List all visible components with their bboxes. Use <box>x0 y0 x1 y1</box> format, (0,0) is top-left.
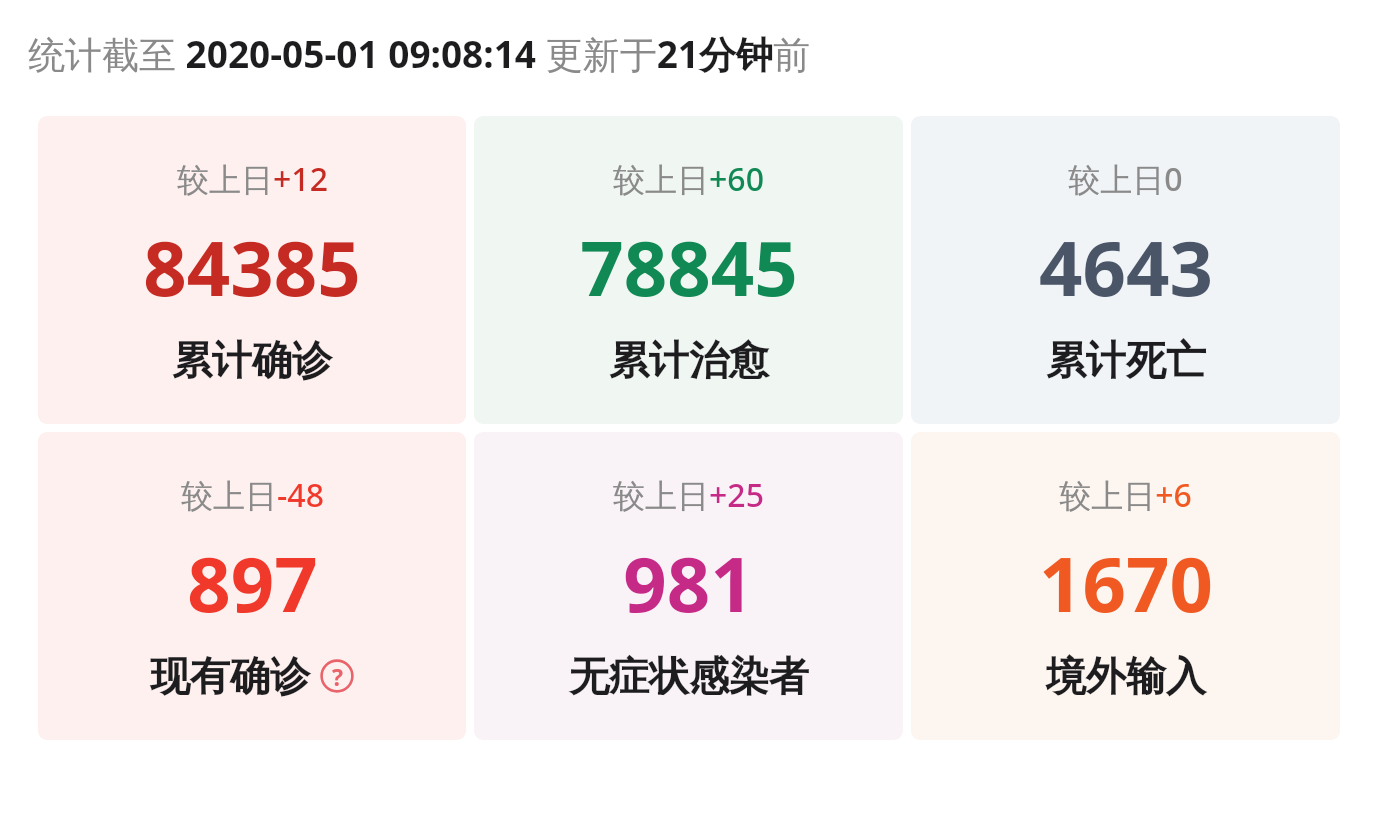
staticText: 84385 <box>143 215 361 319</box>
staticText: 统计截至 2020-05-01 09:08:14 更新于21分钟前 <box>28 28 810 79</box>
staticText: 1670 <box>1039 531 1213 635</box>
staticText: 现有确诊 <box>150 651 310 701</box>
staticText: 897 <box>187 531 318 635</box>
button[interactable]: 较上日+25 <box>474 432 903 740</box>
staticText: 无症状感染者 <box>569 651 809 701</box>
staticText: 较上日+6 <box>1059 473 1192 517</box>
staticText: 较上日-48 <box>181 473 324 517</box>
staticText: 累计死亡 <box>1046 335 1206 385</box>
staticText: 累计治愈 <box>609 335 769 385</box>
staticText: 4643 <box>1039 215 1213 319</box>
button[interactable]: 较上日-48 <box>38 432 466 740</box>
staticText: 累计确诊 <box>172 335 332 385</box>
staticText: 较上日+12 <box>177 157 328 201</box>
button[interactable]: 较上日+60 <box>474 116 903 424</box>
staticText: 981 <box>623 531 754 635</box>
staticText: ? <box>332 661 343 692</box>
staticText: 较上日0 <box>1068 157 1183 201</box>
button[interactable]: 较上日0 <box>911 116 1340 424</box>
staticText: 78845 <box>580 215 798 319</box>
staticText: 较上日+25 <box>613 473 764 517</box>
button[interactable]: 较上日+12 <box>38 116 466 424</box>
button[interactable]: 说明 <box>319 658 355 694</box>
button[interactable]: 较上日+6 <box>911 432 1340 740</box>
staticText: 境外输入 <box>1046 651 1206 701</box>
staticText: 较上日+60 <box>613 157 764 201</box>
